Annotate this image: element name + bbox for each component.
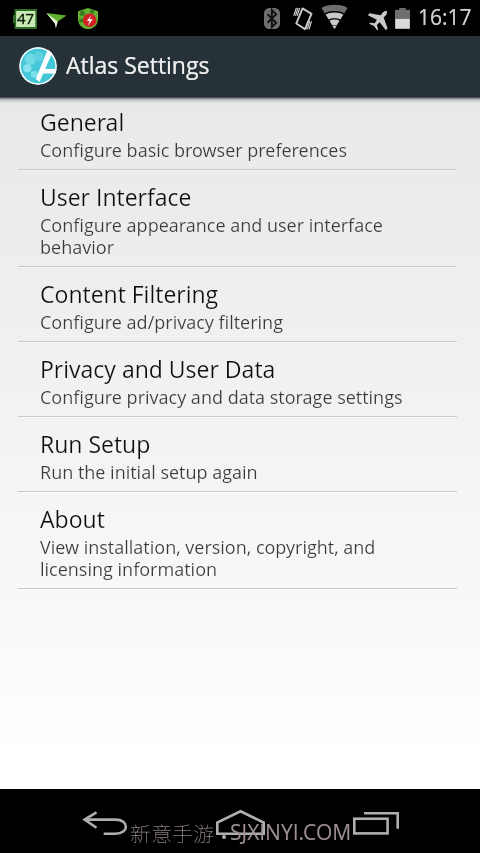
button[interactable]: About xyxy=(0,493,480,588)
button[interactable]: User Interface xyxy=(0,171,480,266)
staticText: 16:17 xyxy=(418,3,472,32)
button[interactable]: Run Setup xyxy=(0,418,480,491)
staticText: Run the initial setup again xyxy=(40,460,258,485)
staticText: 47 xyxy=(17,8,35,28)
staticText: Atlas Settings xyxy=(66,49,210,80)
button[interactable]: Privacy and User Data xyxy=(0,343,480,416)
button[interactable]: Home xyxy=(206,798,275,846)
staticText: User Interface xyxy=(40,181,192,212)
staticText: Configure appearance and user interface … xyxy=(40,213,440,260)
button[interactable]: Back xyxy=(71,799,140,847)
button[interactable]: Content Filtering xyxy=(0,268,480,341)
button[interactable]: General xyxy=(0,96,480,169)
staticText: View installation, version, copyright, a… xyxy=(40,535,440,582)
staticText: Content Filtering xyxy=(40,278,219,309)
staticText: Configure ad/privacy filtering xyxy=(40,310,283,335)
staticText: SJXINYI.COM xyxy=(230,818,352,847)
staticText: Configure privacy and data storage setti… xyxy=(40,385,403,410)
button[interactable]: Recent apps xyxy=(341,800,410,848)
staticText: General xyxy=(40,106,125,137)
staticText: Privacy and User Data xyxy=(40,353,276,384)
staticText: About xyxy=(40,503,105,534)
staticText: Run Setup xyxy=(40,428,151,459)
staticText: Configure basic browser preferences xyxy=(40,138,347,163)
staticText: 新意手游 xyxy=(130,818,214,848)
